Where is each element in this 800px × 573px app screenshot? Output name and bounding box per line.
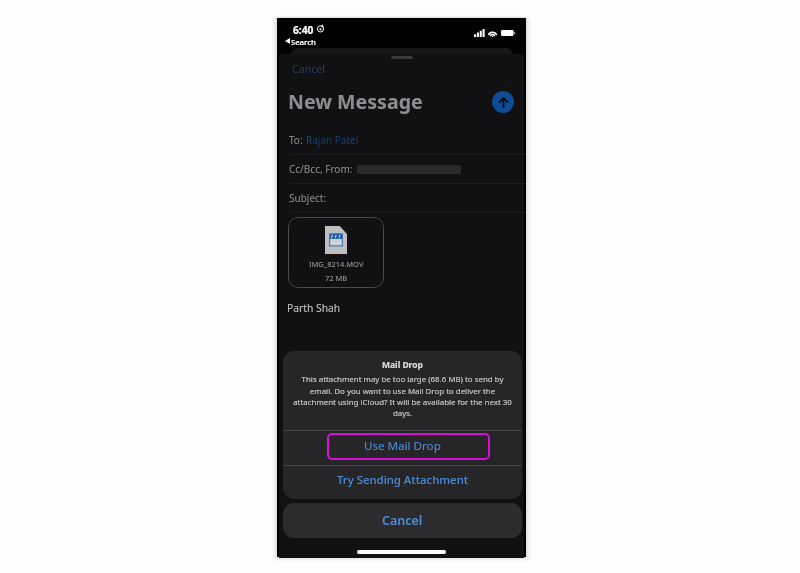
staticText: New Message (288, 88, 423, 115)
staticText: Parth Shah (287, 301, 341, 315)
staticText: Subject: (289, 191, 327, 205)
staticText: Rajan Patel (306, 133, 359, 147)
button[interactable]: IMG_8214.MOV (288, 217, 384, 288)
staticText: To: (289, 133, 306, 147)
button[interactable]: Use Mail Drop (283, 431, 522, 465)
button[interactable]: Cancel (283, 503, 522, 538)
button[interactable]: Send (492, 91, 514, 113)
staticText: Cancel (382, 512, 423, 529)
staticText: Try Sending Attachment (337, 472, 469, 488)
staticText: Use Mail Drop (364, 438, 441, 454)
button[interactable]: Try Sending Attachment (283, 466, 522, 499)
staticText: 6:40 (293, 23, 314, 37)
staticText: Search (291, 37, 316, 47)
staticText: Cc/Bcc, From: (289, 162, 353, 176)
staticText: This attachment may be too large (68.6 M… (290, 374, 515, 418)
button[interactable]: Cancel (284, 59, 332, 78)
staticText: Mail Drop (382, 359, 423, 371)
staticText: IMG_8214.MOV (309, 259, 364, 269)
staticText: 72 MB (325, 273, 348, 283)
staticText: Cancel (292, 62, 325, 76)
